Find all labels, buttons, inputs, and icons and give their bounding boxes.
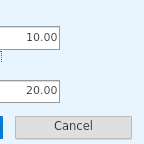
button[interactable]: 20.00 <box>0 80 60 103</box>
staticText: 20.00 <box>26 84 58 97</box>
button[interactable]: 10.00 <box>0 26 60 50</box>
staticText: Cancel <box>54 119 93 132</box>
staticText: 10.00 <box>26 31 58 44</box>
button[interactable]: Cancel <box>15 116 132 139</box>
other: Focused field <box>0 51 2 62</box>
button[interactable]: OK <box>0 116 3 139</box>
